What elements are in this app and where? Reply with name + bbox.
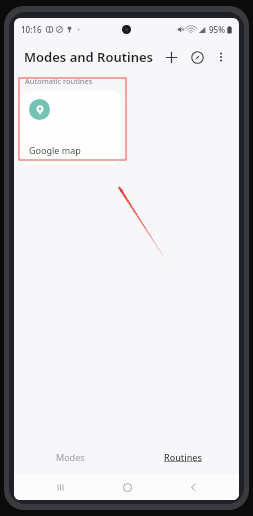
button[interactable]: Google map <box>20 91 122 165</box>
button[interactable]: Discover <box>186 46 208 68</box>
button[interactable]: Home <box>107 474 147 500</box>
staticText: Modes <box>56 451 85 463</box>
staticText: 95% <box>209 24 225 35</box>
staticText: Modes and Routines <box>24 48 153 66</box>
staticText: Google map <box>29 144 81 156</box>
button[interactable]: Back <box>173 474 213 500</box>
button[interactable]: Add <box>160 46 182 68</box>
staticText: Automatic routines <box>25 76 93 86</box>
button[interactable]: Routines <box>126 440 239 474</box>
staticText: 10:16 <box>21 24 42 35</box>
staticText: Routines <box>164 451 202 463</box>
button[interactable]: Recent apps <box>40 474 80 500</box>
button[interactable]: More options <box>211 47 231 67</box>
button[interactable]: Modes <box>14 440 126 474</box>
